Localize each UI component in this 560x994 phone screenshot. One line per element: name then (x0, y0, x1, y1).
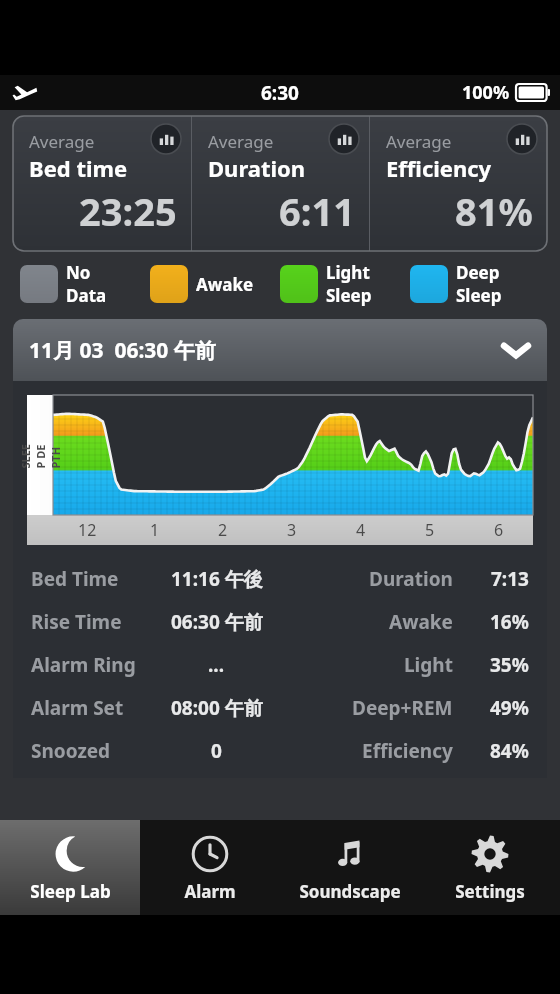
staticText: Duration (369, 566, 453, 592)
staticText: 3 (287, 519, 297, 541)
staticText: 11月 03 06:30 午前 (29, 336, 216, 365)
staticText: Light (404, 652, 453, 678)
button[interactable]: Snoozed (31, 729, 529, 772)
other: Expand (501, 335, 531, 365)
staticText: Average (29, 130, 95, 153)
staticText: 6 (494, 519, 504, 541)
staticText: Bed time (29, 153, 128, 183)
staticText: Efficiency (362, 738, 453, 764)
button[interactable]: Soundscape (280, 820, 420, 915)
staticText: 16% (490, 609, 529, 635)
staticText: 06:30 午前 (171, 609, 263, 635)
staticText: Deep (456, 261, 500, 284)
button[interactable]: Bed Time (31, 557, 529, 600)
staticText: 6:30 (261, 80, 299, 106)
staticText: Awake (196, 273, 254, 296)
button[interactable]: Settings (420, 820, 560, 915)
staticText: Sleep (456, 284, 502, 307)
staticText: Sleep Lab (30, 880, 111, 903)
staticText: No (66, 261, 91, 284)
button[interactable]: Light (280, 261, 410, 307)
button[interactable]: Average (370, 116, 547, 251)
staticText: 08:00 午前 (171, 695, 263, 721)
staticText: Duration (208, 153, 306, 183)
button[interactable]: Alarm Ring (31, 643, 529, 686)
staticText: 2 (218, 519, 228, 541)
other: Statistics (151, 124, 181, 154)
button[interactable]: 11月 03 06:30 午前 (13, 319, 547, 381)
button[interactable]: Average (192, 116, 369, 251)
other: Statistics (329, 124, 359, 154)
staticText: Settings (455, 880, 525, 903)
staticText: Bed Time (31, 566, 143, 592)
staticText: Light (326, 261, 370, 284)
staticText: 12 (78, 519, 97, 541)
staticText: 35% (490, 652, 529, 678)
button[interactable]: Alarm Set (31, 686, 529, 729)
other: Statistics (507, 124, 537, 154)
staticText: 1 (150, 519, 160, 541)
staticText: Alarm Set (31, 695, 143, 721)
button[interactable]: Sleep Lab (0, 820, 140, 915)
staticText: 11:16 午後 (171, 566, 263, 592)
staticText: Awake (389, 609, 453, 635)
staticText: 6:11 (279, 185, 355, 237)
button[interactable]: Alarm (140, 820, 280, 915)
staticText: Data (66, 284, 107, 307)
staticText: 4 (356, 519, 366, 541)
staticText: SLEEP DEPTH (17, 442, 62, 468)
staticText: 7:13 (491, 566, 529, 592)
button[interactable]: Deep (410, 261, 540, 307)
staticText: ... (208, 652, 225, 678)
staticText: Sleep (326, 284, 372, 307)
staticText: 84% (490, 738, 529, 764)
button[interactable]: Awake (150, 265, 280, 303)
staticText: 81% (455, 185, 533, 237)
staticText: Efficiency (386, 153, 492, 183)
staticText: Average (386, 130, 452, 153)
staticText: Snoozed (31, 738, 143, 764)
button[interactable]: Rise Time (31, 600, 529, 643)
staticText: Alarm (184, 880, 236, 903)
staticText: Deep+REM (352, 695, 453, 721)
staticText: Alarm Ring (31, 652, 143, 678)
staticText: 5 (425, 519, 435, 541)
staticText: Rise Time (31, 609, 143, 635)
button[interactable]: Average (13, 116, 191, 251)
button[interactable]: No (20, 261, 150, 307)
staticText: 0 (211, 738, 222, 764)
staticText: 49% (490, 695, 529, 721)
staticText: Soundscape (299, 880, 401, 903)
staticText: 23:25 (79, 185, 177, 237)
staticText: 100% (462, 80, 510, 105)
staticText: Average (208, 130, 274, 153)
